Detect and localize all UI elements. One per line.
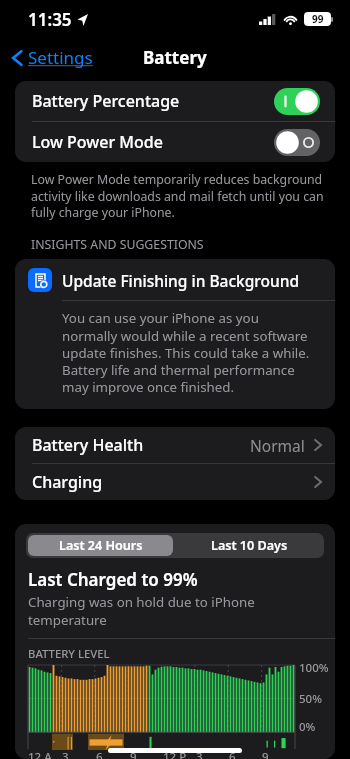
button[interactable]: Off — [274, 129, 320, 156]
staticText: Low Power Mode temporarily reduces backg… — [31, 171, 324, 220]
staticText: Last 24 Hours — [59, 537, 143, 554]
staticText: 3 — [196, 749, 203, 759]
staticText: 100% — [299, 660, 329, 676]
button[interactable]: Charging — [15, 464, 335, 500]
staticText: Normal — [250, 435, 305, 456]
staticText: Battery Percentage — [32, 90, 180, 112]
staticText: BATTERY LEVEL — [28, 646, 110, 661]
button[interactable]: Battery Health — [15, 427, 335, 463]
staticText: Charging was on hold due to iPhone tempe… — [28, 593, 335, 629]
staticText: 11:35 — [28, 8, 72, 31]
staticText: You can use your iPhone as you normally … — [62, 309, 317, 396]
staticText: 9 — [262, 749, 269, 759]
staticText: INSIGHTS AND SUGGESTIONS — [31, 236, 204, 253]
button[interactable]: On — [274, 88, 320, 115]
staticText: Battery Health — [32, 434, 144, 456]
staticText: 9 — [130, 749, 137, 759]
staticText: 12 P — [163, 749, 187, 759]
staticText: Last Charged to 99% — [28, 568, 198, 591]
staticText: 6 — [96, 749, 103, 759]
staticText: 12 A — [28, 749, 52, 759]
button[interactable]: Settings — [8, 42, 97, 73]
button[interactable]: Last 24 Hours — [28, 535, 173, 556]
staticText: 3 — [62, 749, 69, 759]
staticText: Charging — [32, 471, 103, 493]
staticText: 99 — [312, 12, 324, 26]
button[interactable]: Battery Percentage — [15, 81, 335, 121]
staticText: Last 10 Days — [211, 537, 288, 554]
staticText: Battery — [143, 46, 207, 69]
button[interactable]: Update Finishing in Background — [15, 259, 335, 409]
staticText: Settings — [28, 46, 93, 69]
button[interactable]: Last 10 Days — [175, 533, 324, 558]
staticText: 6 — [229, 749, 236, 759]
staticText: Update Finishing in Background — [62, 270, 300, 291]
button[interactable]: Low Power Mode — [15, 122, 335, 162]
staticText: Low Power Mode — [32, 131, 163, 153]
staticText: 0% — [299, 719, 316, 735]
staticText: 50% — [299, 691, 322, 707]
